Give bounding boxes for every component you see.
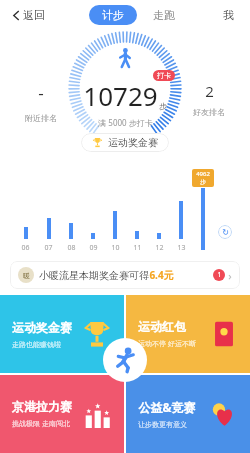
button[interactable]: 运动奖金赛 xyxy=(81,133,169,152)
button[interactable]: 刷新 xyxy=(214,225,236,253)
button[interactable]: 京港拉力赛 xyxy=(0,375,124,453)
staticText: 京港拉力赛 xyxy=(12,399,72,414)
staticText: 步 xyxy=(159,101,167,111)
button[interactable]: 返回 xyxy=(8,4,49,26)
staticText: 运动不停 好运不断 xyxy=(138,339,196,349)
staticText: 09 xyxy=(89,243,98,253)
button[interactable]: 打卡 xyxy=(153,70,175,81)
staticText: 12 xyxy=(155,243,164,253)
staticText: 小暖流星本期奖金赛可得 xyxy=(39,269,149,282)
staticText: 让步数更有意义 xyxy=(138,420,187,429)
staticText: 10729 xyxy=(83,78,158,113)
button[interactable]: 公益&竞赛 xyxy=(126,375,250,453)
staticText: 07 xyxy=(44,243,53,253)
staticText: 打卡 xyxy=(157,71,171,80)
button[interactable]: 暖 xyxy=(10,261,240,289)
staticText: 计步 xyxy=(102,8,124,22)
button[interactable]: 11 xyxy=(126,231,148,253)
staticText: 附近排名 xyxy=(25,113,57,123)
button[interactable]: 运动红包 xyxy=(126,295,250,373)
staticText: 11 xyxy=(133,243,142,253)
button[interactable]: 10 xyxy=(104,211,126,253)
button[interactable]: 07 xyxy=(37,218,60,253)
staticText: 1 xyxy=(217,270,222,280)
staticText: 06 xyxy=(21,243,30,253)
staticText: 运动红包 xyxy=(138,319,186,334)
staticText: 10 xyxy=(111,243,120,253)
staticText: 08 xyxy=(67,243,76,253)
staticText: 好友排名 xyxy=(193,107,225,117)
button[interactable]: 2 xyxy=(190,78,228,120)
staticText: 走路也能赚钱啦 xyxy=(12,340,61,349)
staticText: 4962步 xyxy=(195,170,211,186)
button[interactable]: 08 xyxy=(60,223,82,253)
button[interactable]: 4962步 xyxy=(192,169,214,253)
staticText: ↻ xyxy=(222,228,229,237)
button[interactable]: 运动奖金赛 xyxy=(0,295,124,373)
staticText: 暖 xyxy=(23,271,30,280)
staticText: 6.4元 xyxy=(149,268,174,282)
staticText: 满 5000 步打卡 xyxy=(98,117,153,128)
staticText: 13 xyxy=(177,243,186,253)
staticText: 运动奖金赛 xyxy=(108,136,158,149)
staticText: 运动奖金赛 xyxy=(12,320,72,335)
button[interactable]: 开始跑步 xyxy=(103,338,147,382)
button[interactable]: 我 xyxy=(219,4,238,26)
staticText: 挑战极限 走南闯北 xyxy=(12,419,70,429)
staticText: 2 xyxy=(205,81,214,101)
staticText: 我 xyxy=(223,8,234,22)
button[interactable]: 09 xyxy=(82,233,104,253)
button[interactable]: 12 xyxy=(148,233,170,253)
staticText: 公益&竞赛 xyxy=(138,399,196,415)
button[interactable]: - xyxy=(22,78,60,126)
button[interactable]: 走跑 xyxy=(149,4,179,26)
button[interactable]: 计步 xyxy=(89,5,137,25)
staticText: - xyxy=(38,81,44,104)
staticText: › xyxy=(228,268,232,283)
button[interactable]: 13 xyxy=(170,201,192,253)
button[interactable]: 06 xyxy=(14,227,37,253)
staticText: 返回 xyxy=(23,8,45,22)
staticText: 走跑 xyxy=(153,8,175,22)
other: 刷新 xyxy=(218,225,232,239)
